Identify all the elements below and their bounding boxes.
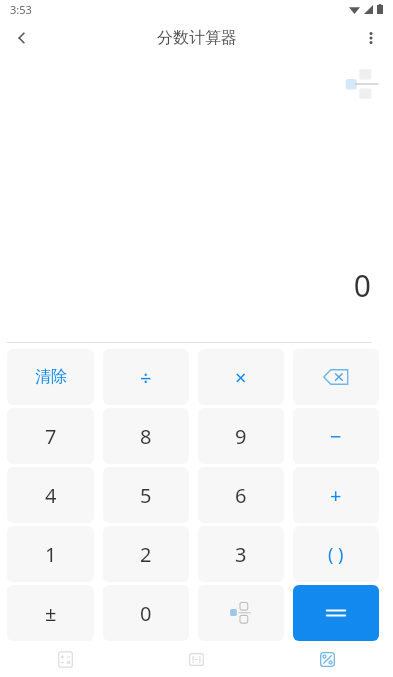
button[interactable]: Back: [0, 18, 44, 58]
button[interactable]: 2: [103, 526, 189, 582]
button[interactable]: ÷: [103, 349, 189, 405]
button[interactable]: ±: [7, 585, 94, 641]
button[interactable]: −: [293, 408, 379, 464]
staticText: 8: [140, 423, 152, 450]
staticText: 4: [45, 482, 57, 509]
button[interactable]: 4: [7, 467, 94, 523]
staticText: 3: [235, 541, 247, 568]
staticText: 2: [140, 541, 152, 568]
button[interactable]: Fraction calculator: [262, 641, 393, 677]
button[interactable]: 7: [7, 408, 94, 464]
staticText: 6: [235, 482, 247, 509]
button[interactable]: Converter: [131, 641, 262, 677]
button[interactable]: Basic calculator: [0, 641, 131, 677]
button[interactable]: ( ): [293, 526, 379, 582]
staticText: 5: [140, 482, 152, 509]
button[interactable]: More options: [349, 18, 393, 58]
button[interactable]: 8: [103, 408, 189, 464]
staticText: 9: [235, 423, 247, 450]
staticText: 3:53: [10, 2, 32, 17]
button[interactable]: 5: [103, 467, 189, 523]
staticText: 分数计算器: [157, 28, 237, 48]
button[interactable]: Equals: [293, 585, 379, 641]
staticText: ( ): [328, 542, 344, 567]
staticText: 0: [0, 265, 371, 306]
staticText: 0: [140, 600, 152, 627]
button[interactable]: 0: [103, 585, 189, 641]
staticText: ÷: [140, 364, 152, 391]
button[interactable]: 3: [198, 526, 284, 582]
button[interactable]: Backspace: [293, 349, 379, 405]
button[interactable]: 6: [198, 467, 284, 523]
staticText: +: [330, 482, 342, 509]
button[interactable]: 清除: [7, 349, 94, 405]
button[interactable]: Fraction: [198, 585, 284, 641]
button[interactable]: +: [293, 467, 379, 523]
button[interactable]: 1: [7, 526, 94, 582]
staticText: 清除: [35, 367, 67, 387]
staticText: 7: [45, 423, 57, 450]
staticText: ×: [235, 364, 247, 391]
staticText: 1: [45, 541, 57, 568]
button[interactable]: 9: [198, 408, 284, 464]
staticText: ±: [45, 600, 57, 627]
button[interactable]: ×: [198, 349, 284, 405]
staticText: −: [330, 423, 342, 450]
